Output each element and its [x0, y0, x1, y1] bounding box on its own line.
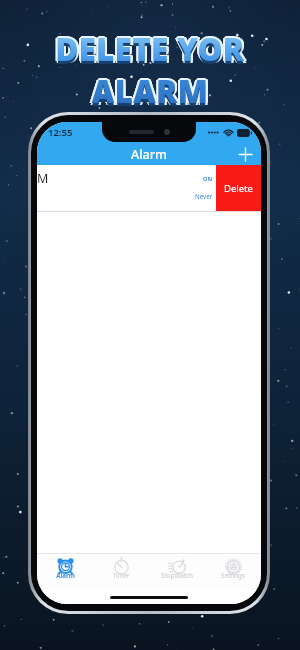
staticText: DELETE YOR ALARM — [0, 28, 300, 112]
staticText: DELETE YOR ALARM — [2, 28, 300, 112]
button[interactable]: Add alarm — [234, 143, 256, 165]
staticText: DELETE YOR ALARM — [0, 26, 300, 110]
staticText: DELETE YOR ALARM — [0, 31, 300, 115]
staticText: DELETE YOR ALARM — [2, 28, 300, 112]
staticText: Delete — [224, 182, 253, 195]
staticText: Never — [195, 192, 213, 200]
button[interactable]: Alarm — [37, 555, 93, 590]
staticText: Settings — [221, 571, 245, 580]
staticText: DELETE YOR ALARM — [0, 28, 298, 112]
staticText: Alarm — [56, 571, 75, 580]
staticText: Timer — [112, 571, 130, 580]
button[interactable]: Settings — [205, 555, 261, 590]
staticText: DELETE YOR ALARM — [2, 30, 300, 114]
staticText: 12:55 — [48, 126, 73, 139]
staticText: ON — [203, 175, 213, 183]
staticText: DELETE YOR ALARM — [0, 30, 299, 114]
button[interactable]: Delete — [216, 165, 261, 211]
staticText: StopWatch — [161, 571, 193, 580]
staticText: Alarm — [131, 146, 167, 163]
staticText: DELETE YOR ALARM — [0, 27, 299, 111]
staticText: M — [37, 170, 49, 187]
staticText: DELETE YOR ALARM — [0, 28, 298, 112]
button[interactable]: M — [37, 165, 216, 211]
staticText: DELETE YOR ALARM — [2, 27, 300, 111]
staticText: DELETE YOR ALARM — [0, 30, 300, 114]
button[interactable]: StopWatch — [149, 555, 205, 590]
button[interactable]: Timer — [93, 555, 149, 590]
